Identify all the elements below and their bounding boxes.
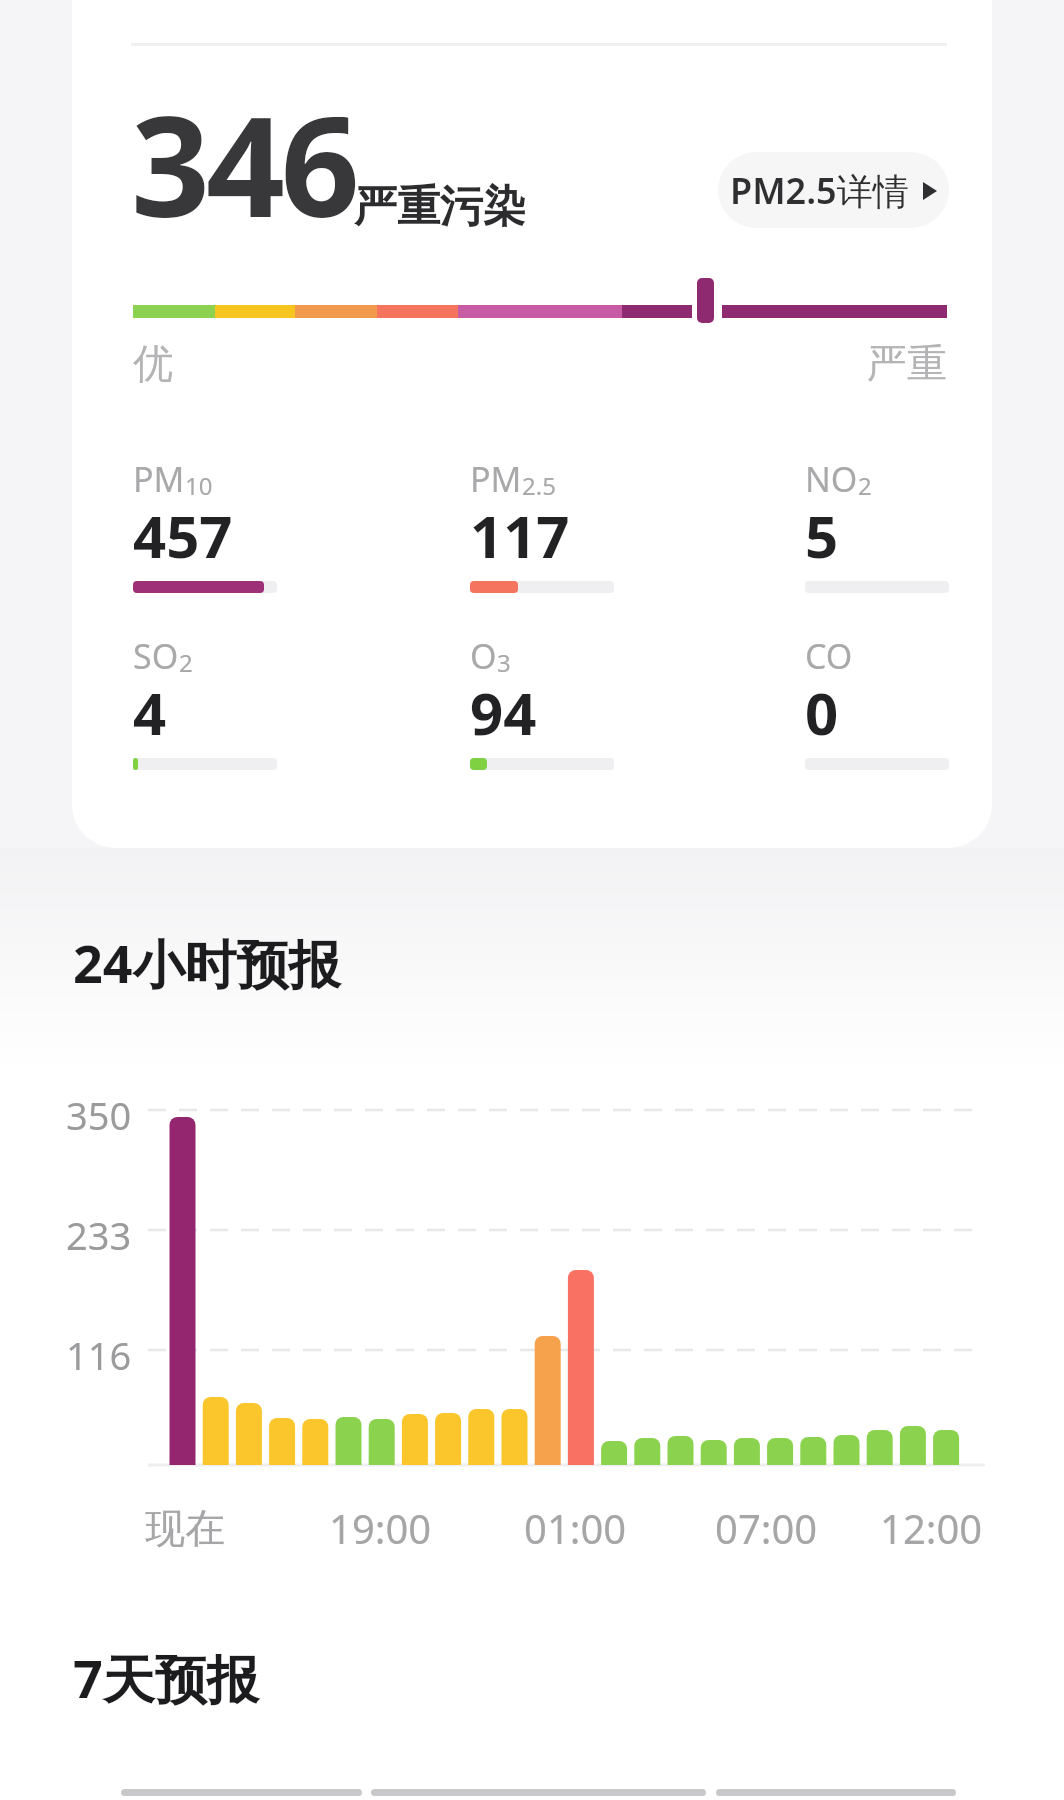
staticText: 5: [805, 496, 839, 575]
staticText: 07:00: [715, 1501, 818, 1555]
staticText: 现在: [145, 1503, 225, 1553]
staticText: 19:00: [329, 1501, 432, 1555]
staticText: 350: [66, 1089, 132, 1141]
staticText: 24小时预报: [73, 927, 341, 998]
staticText: 严重: [867, 338, 947, 388]
staticText: NO: [805, 456, 858, 502]
staticText: O: [470, 633, 497, 679]
staticText: 12:00: [880, 1501, 983, 1555]
staticText: 严重污染: [354, 180, 526, 234]
staticText: 0: [805, 673, 839, 752]
staticText: 7天预报: [73, 1642, 259, 1713]
staticText: 117: [470, 496, 570, 575]
staticText: SO: [133, 633, 179, 679]
staticText: PM: [133, 456, 185, 502]
staticText: 457: [133, 496, 233, 575]
staticText: PM2.5详情: [730, 166, 909, 215]
staticText: 346: [131, 69, 356, 257]
staticText: 优: [133, 338, 173, 388]
staticText: 94: [470, 673, 537, 752]
staticText: 10: [185, 469, 213, 502]
staticText: 116: [66, 1329, 132, 1381]
staticText: 3: [497, 646, 511, 679]
staticText: PM: [470, 456, 522, 502]
staticText: CO: [805, 633, 853, 679]
staticText: 01:00: [524, 1501, 627, 1555]
staticText: 233: [66, 1209, 132, 1261]
staticText: 2.5: [522, 469, 556, 502]
staticText: 2: [179, 646, 193, 679]
button[interactable]: PM2.5详情: [718, 152, 949, 228]
staticText: 2: [858, 469, 872, 502]
staticText: 4: [133, 673, 167, 752]
